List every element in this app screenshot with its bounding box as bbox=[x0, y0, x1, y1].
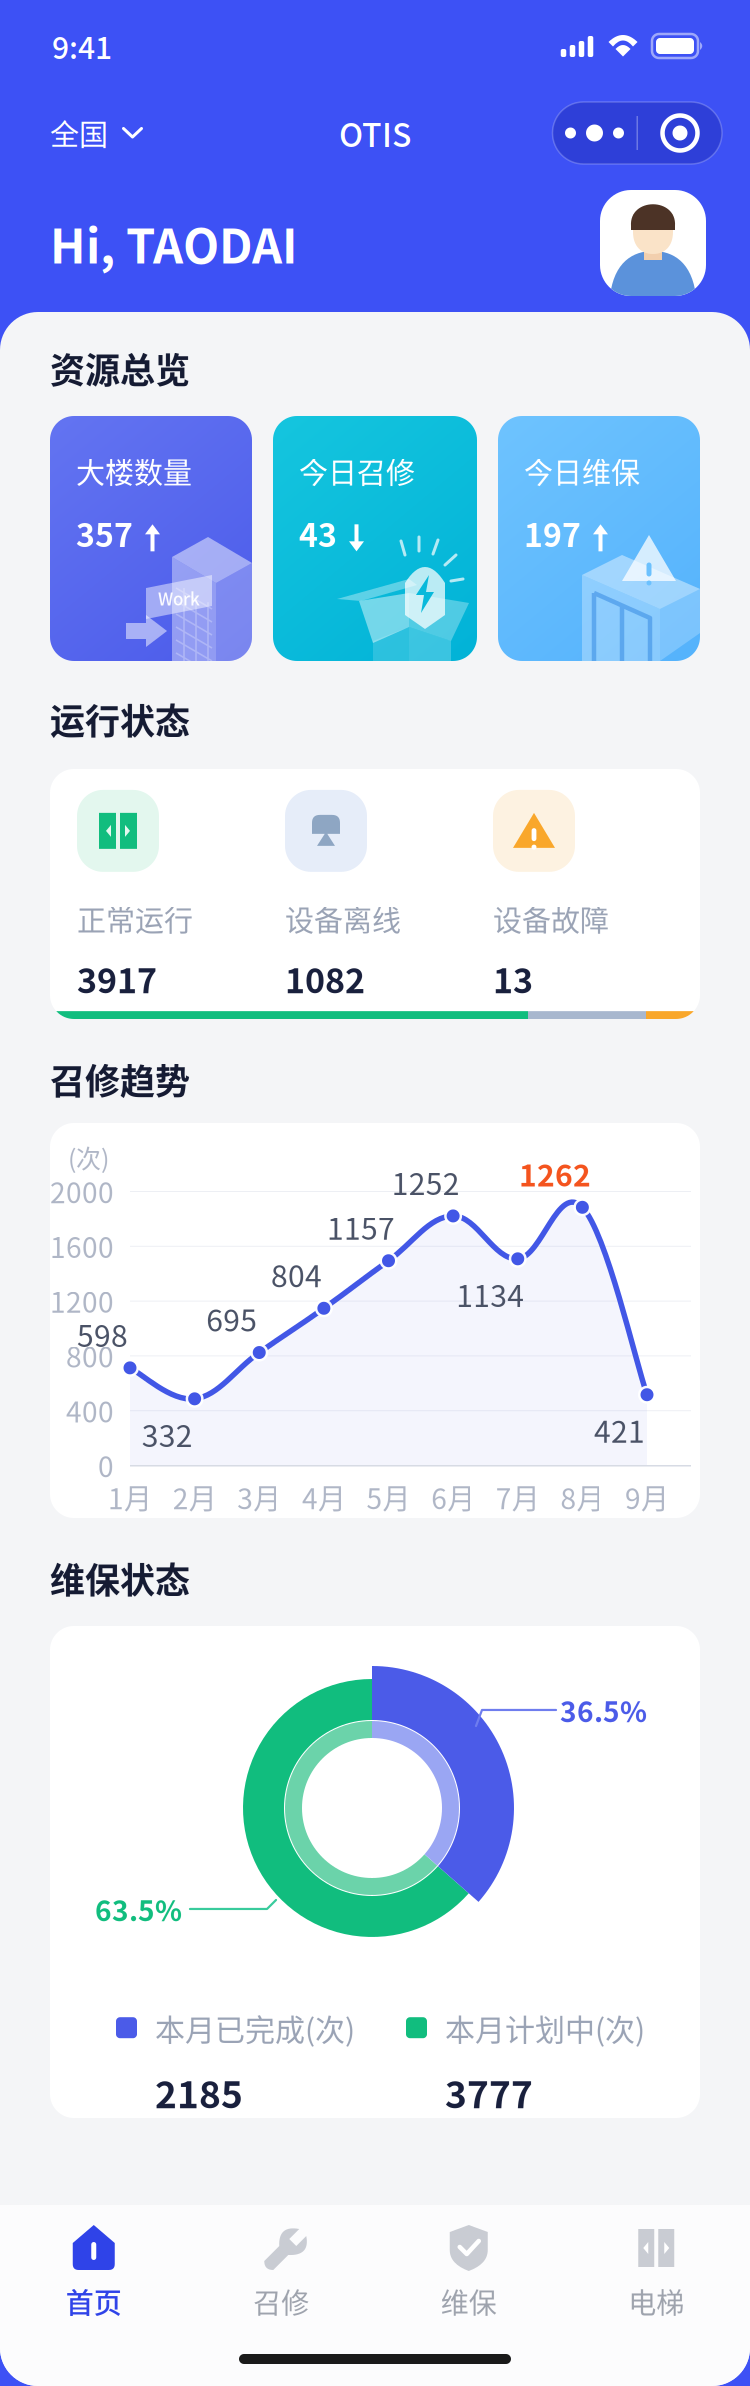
staticText: 421 bbox=[594, 1408, 645, 1451]
staticText: 9月 bbox=[625, 1477, 669, 1517]
button[interactable]: 全国 bbox=[0, 98, 159, 168]
button[interactable]: 今日召修 bbox=[273, 416, 477, 661]
staticText: 0 bbox=[98, 1445, 114, 1485]
staticText: 召修趋势 bbox=[50, 1054, 190, 1104]
button[interactable]: 首页 bbox=[0, 2219, 187, 2325]
button[interactable]: 今日维保 bbox=[498, 416, 700, 661]
staticText: 3月 bbox=[237, 1477, 281, 1517]
staticText: 800 bbox=[66, 1335, 114, 1376]
staticText: 7月 bbox=[496, 1477, 540, 1517]
button[interactable]: 电梯 bbox=[562, 2219, 750, 2325]
staticText: 1157 bbox=[327, 1205, 395, 1248]
button[interactable]: More bbox=[552, 102, 636, 164]
staticText: 资源总览 bbox=[50, 343, 190, 393]
staticText: 1252 bbox=[392, 1160, 460, 1204]
staticText: 357 bbox=[76, 510, 133, 556]
staticText: 695 bbox=[206, 1297, 257, 1340]
staticText: 4月 bbox=[302, 1477, 346, 1517]
staticText: Hi, TAODAI bbox=[50, 209, 298, 277]
staticText: 1月 bbox=[108, 1477, 152, 1517]
staticText: 598 bbox=[77, 1312, 128, 1355]
staticText: 首页 bbox=[66, 2281, 122, 2321]
staticText: 2000 bbox=[50, 1171, 114, 1211]
staticText: 3917 bbox=[77, 954, 157, 1003]
staticText: 13 bbox=[493, 954, 533, 1003]
staticText: 36.5% bbox=[560, 1690, 647, 1730]
staticText: (次) bbox=[68, 1139, 109, 1175]
staticText: 今日召修 bbox=[299, 450, 415, 492]
staticText: 1600 bbox=[50, 1225, 114, 1266]
staticText: 电梯 bbox=[628, 2281, 684, 2321]
staticText: Work bbox=[158, 586, 200, 610]
staticText: 197 bbox=[524, 510, 581, 556]
staticText: 63.5% bbox=[95, 1889, 182, 1929]
staticText: 804 bbox=[271, 1253, 322, 1296]
staticText: 设备故障 bbox=[493, 898, 609, 940]
staticText: 3777 bbox=[445, 2065, 533, 2119]
staticText: 5月 bbox=[366, 1477, 410, 1517]
staticText: 1262 bbox=[519, 1152, 591, 1195]
button[interactable]: 召修 bbox=[187, 2219, 375, 2325]
staticText: 召修 bbox=[253, 2281, 309, 2321]
staticText: 1134 bbox=[456, 1272, 524, 1315]
staticText: 9:41 bbox=[52, 24, 112, 68]
staticText: 设备离线 bbox=[285, 898, 401, 940]
staticText: 332 bbox=[142, 1412, 193, 1455]
staticText: 2月 bbox=[173, 1477, 217, 1517]
staticText: 2185 bbox=[155, 2065, 243, 2119]
staticText: 6月 bbox=[431, 1477, 475, 1517]
staticText: 大楼数量 bbox=[76, 450, 192, 492]
button[interactable]: Close mini program bbox=[638, 102, 722, 164]
staticText: 1200 bbox=[50, 1280, 114, 1321]
staticText: OTIS bbox=[339, 110, 411, 156]
staticText: 维保状态 bbox=[50, 1553, 190, 1603]
staticText: 正常运行 bbox=[77, 898, 193, 940]
staticText: 维保 bbox=[441, 2281, 497, 2321]
staticText: 全国 bbox=[50, 112, 108, 154]
staticText: 43 bbox=[299, 510, 337, 556]
staticText: 今日维保 bbox=[524, 450, 640, 492]
staticText: 400 bbox=[66, 1390, 114, 1430]
button[interactable]: Profile bbox=[600, 190, 706, 296]
button[interactable]: 维保 bbox=[375, 2219, 562, 2325]
staticText: 8月 bbox=[560, 1477, 604, 1517]
staticText: 运行状态 bbox=[50, 694, 190, 744]
staticText: 1082 bbox=[285, 954, 365, 1003]
staticText: 本月计划中(次) bbox=[445, 2006, 645, 2049]
button[interactable]: Work bbox=[50, 416, 252, 661]
staticText: 本月已完成(次) bbox=[155, 2006, 355, 2049]
